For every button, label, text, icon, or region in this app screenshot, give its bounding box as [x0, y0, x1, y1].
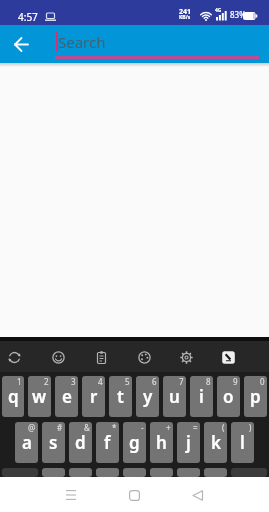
button[interactable]: 3 [55, 376, 78, 417]
staticText: a [22, 431, 32, 454]
staticText: t [117, 385, 124, 408]
staticText: 241 [179, 7, 192, 17]
staticText: - [141, 422, 144, 433]
staticText: 83% [230, 9, 246, 20]
staticText: p [250, 385, 261, 408]
staticText: l [240, 431, 245, 454]
staticText: Search [58, 32, 106, 52]
staticText: 9 [233, 376, 238, 387]
button[interactable] [8, 31, 35, 58]
staticText: 4G [215, 7, 222, 14]
staticText: r [90, 385, 98, 408]
staticText: f [104, 431, 111, 454]
button[interactable] [204, 468, 227, 477]
staticText: s [49, 431, 58, 454]
staticText: = [193, 422, 198, 433]
staticText: + [166, 422, 171, 433]
staticText: 4 [98, 376, 103, 387]
staticText: i [199, 385, 204, 408]
button[interactable] [69, 468, 92, 477]
button[interactable]: 7 [163, 376, 186, 417]
staticText: 8 [206, 376, 211, 387]
staticText: g [129, 431, 140, 454]
staticText: w [32, 385, 47, 408]
button[interactable] [45, 344, 71, 370]
staticText: * [112, 422, 117, 433]
button[interactable]: # [42, 422, 65, 463]
staticText: 1 [17, 376, 22, 387]
staticText: 3 [71, 376, 76, 387]
button[interactable] [183, 480, 213, 510]
button[interactable] [231, 468, 267, 477]
button[interactable]: 8 [190, 376, 213, 417]
button[interactable]: + [150, 422, 173, 463]
button[interactable]: - [123, 422, 146, 463]
button[interactable] [150, 468, 173, 477]
staticText: h [156, 431, 167, 454]
staticText: u [169, 385, 180, 408]
button[interactable]: 5 [109, 376, 132, 417]
button[interactable]: * [96, 422, 119, 463]
button[interactable]: 9 [217, 376, 240, 417]
staticText: 0 [260, 376, 265, 387]
staticText: 5 [125, 376, 130, 387]
staticText: j [186, 431, 191, 454]
button[interactable]: 0 [244, 376, 267, 417]
staticText: ( [222, 422, 225, 433]
button[interactable] [123, 468, 146, 477]
button[interactable] [215, 344, 241, 370]
button[interactable]: 4 [82, 376, 105, 417]
button[interactable] [177, 468, 200, 477]
staticText: ) [249, 422, 252, 433]
staticText: 6 [152, 376, 157, 387]
staticText: # [57, 422, 63, 433]
button[interactable] [173, 344, 199, 370]
staticText: 2 [44, 376, 49, 387]
button[interactable] [119, 480, 149, 510]
staticText: d [75, 431, 86, 454]
staticText: e [62, 385, 72, 408]
button[interactable]: 2 [28, 376, 51, 417]
button[interactable]: 6 [136, 376, 159, 417]
button[interactable] [2, 468, 38, 477]
button[interactable] [131, 344, 157, 370]
staticText: y [143, 385, 153, 408]
button[interactable] [96, 468, 119, 477]
button[interactable] [88, 344, 114, 370]
staticText: @ [28, 422, 36, 433]
button[interactable] [1, 344, 27, 370]
button[interactable]: ( [204, 422, 227, 463]
button[interactable] [56, 480, 86, 510]
button[interactable]: 1 [2, 376, 24, 417]
staticText: o [223, 385, 234, 408]
staticText: k [211, 431, 221, 454]
staticText: q [8, 385, 19, 408]
staticText: KB/s [179, 14, 191, 21]
button[interactable]: = [177, 422, 200, 463]
button[interactable]: & [69, 422, 92, 463]
staticText: 4:57 [18, 10, 38, 24]
button[interactable]: ) [231, 422, 254, 463]
button[interactable]: @ [15, 422, 38, 463]
button[interactable] [42, 468, 65, 477]
staticText: & [84, 422, 90, 433]
staticText: 7 [179, 376, 184, 387]
